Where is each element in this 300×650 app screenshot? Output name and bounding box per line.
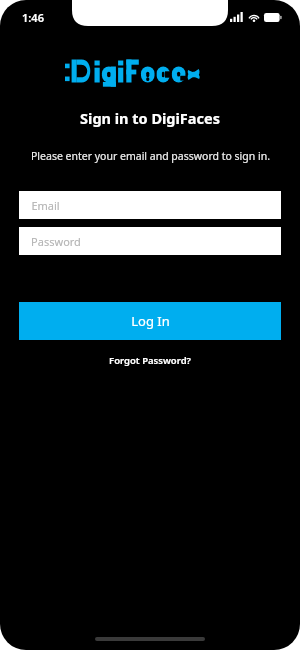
staticText: Forgot Password? (109, 354, 191, 367)
button[interactable]: Log In (19, 302, 281, 340)
staticText: 1:46 (22, 10, 44, 25)
staticText: Please enter your email and password to … (31, 149, 270, 163)
staticText: Sign in to DigiFaces (80, 108, 220, 128)
staticText: Password (31, 234, 81, 249)
button[interactable]: Email (19, 191, 281, 219)
staticText: Email (31, 198, 60, 213)
other: DigiFaces logo (65, 58, 235, 88)
button[interactable]: Forgot Password? (101, 352, 199, 369)
button[interactable]: Password (19, 227, 281, 255)
staticText: Log In (131, 312, 170, 330)
